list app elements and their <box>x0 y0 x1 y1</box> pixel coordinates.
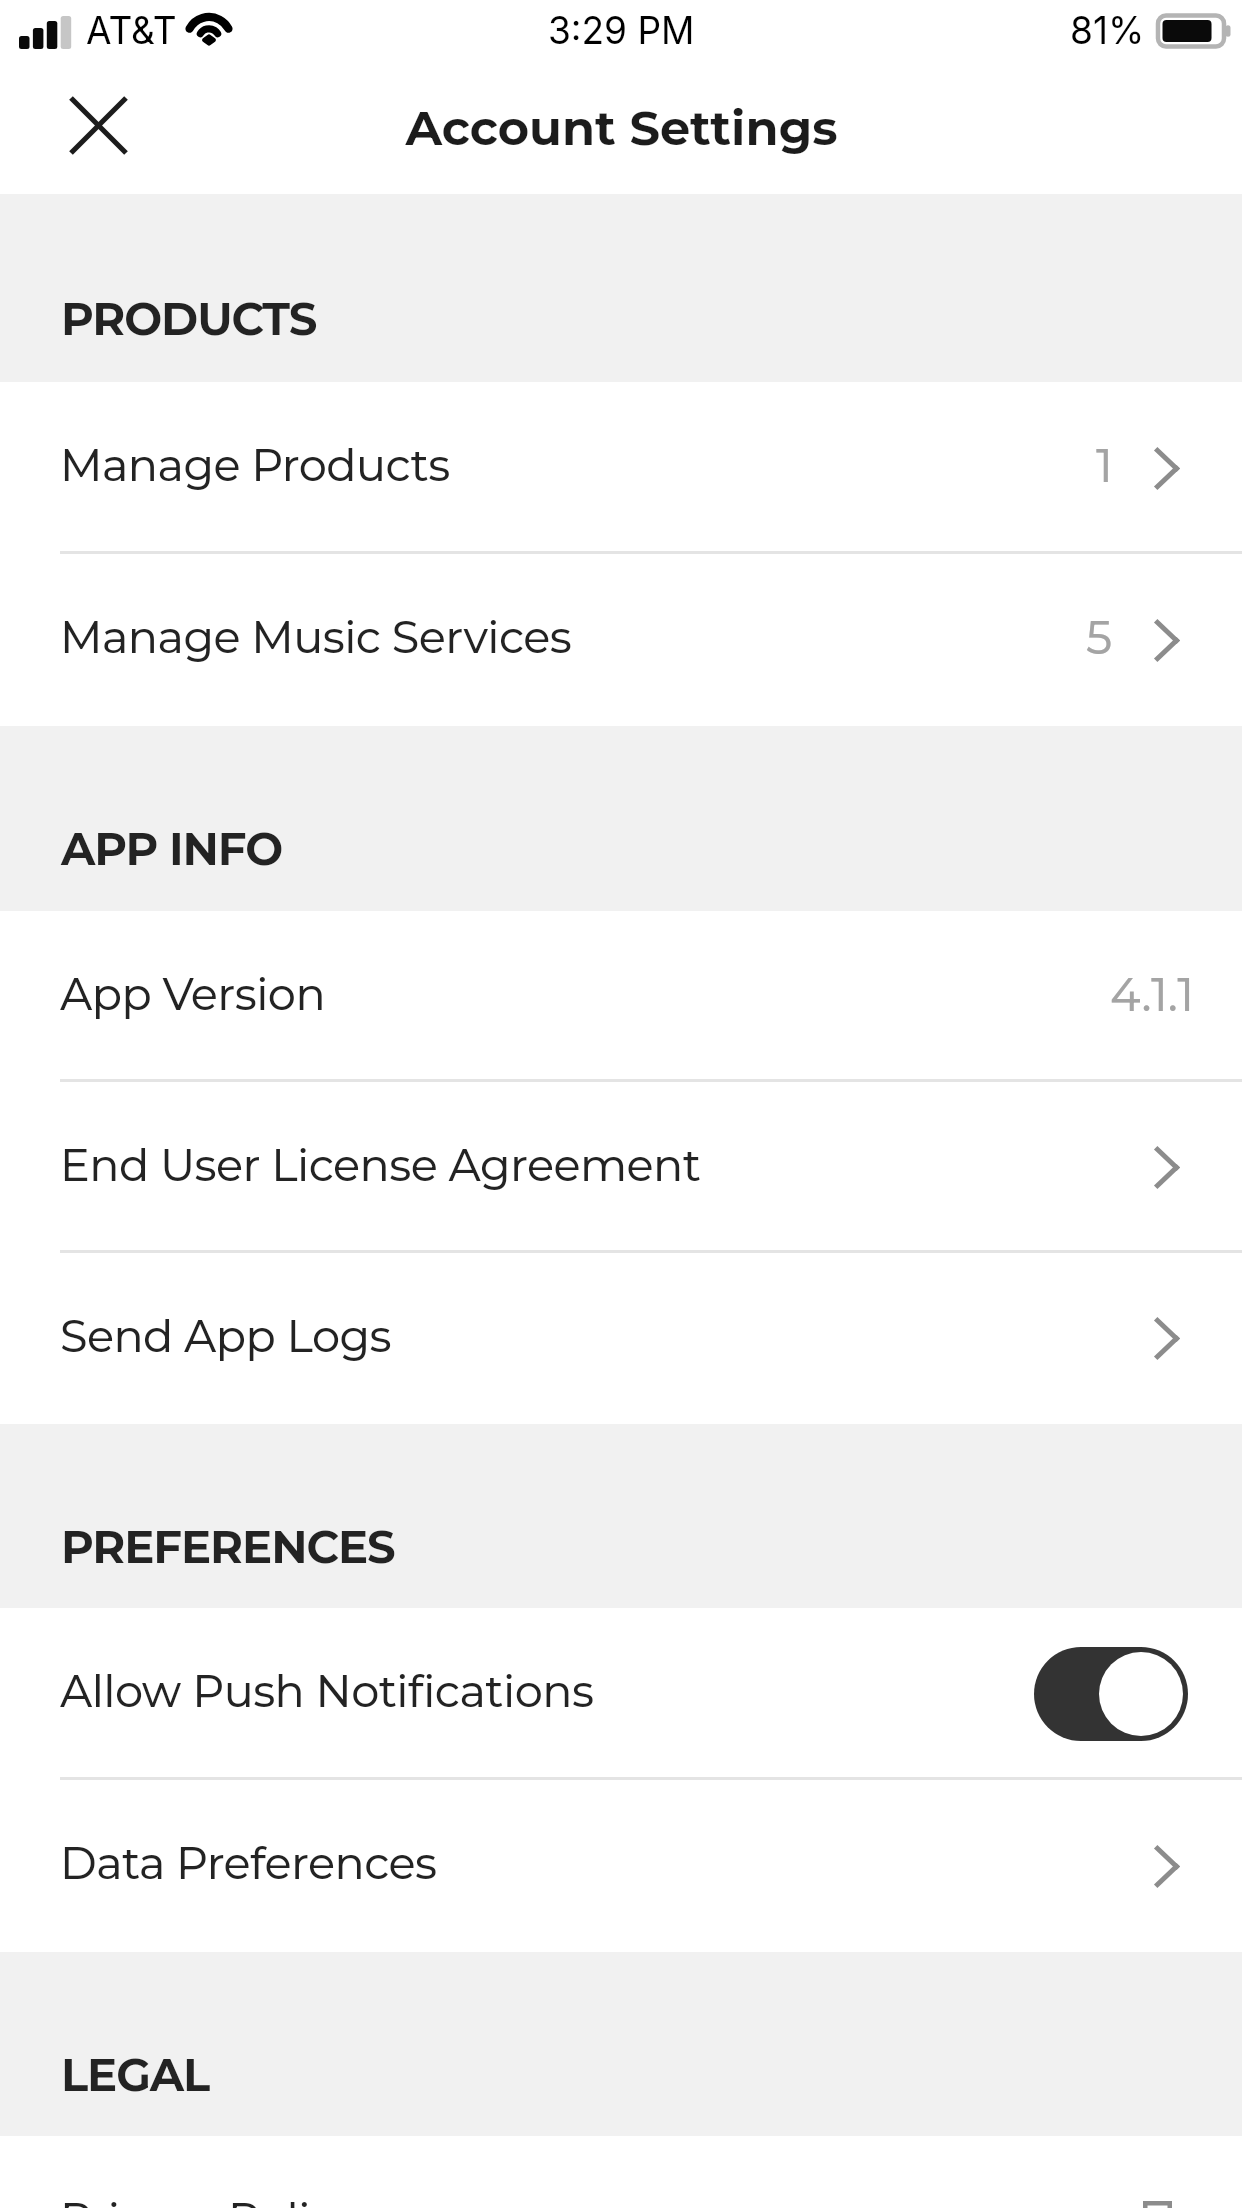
button[interactable]: Close <box>62 89 134 161</box>
button[interactable]: Manage Music Services <box>0 554 1242 726</box>
staticText: Manage Products <box>60 438 450 492</box>
staticText: 4.1.1 <box>1110 966 1195 1022</box>
button[interactable]: Privacy Policy <box>0 2136 1242 2208</box>
staticText: End User License Agreement <box>60 1138 701 1192</box>
button[interactable]: Allow Push Notifications <box>1034 1647 1188 1741</box>
staticText: 5 <box>1086 609 1113 665</box>
staticText: Manage Music Services <box>60 610 572 664</box>
staticText: Privacy Policy <box>60 2192 359 2208</box>
button[interactable]: Send App Logs <box>0 1253 1242 1424</box>
staticText: Allow Push Notifications <box>60 1664 594 1718</box>
staticText: PRODUCTS <box>61 291 317 346</box>
staticText: Data Preferences <box>60 1836 437 1890</box>
staticText: PREFERENCES <box>61 1519 395 1574</box>
button[interactable]: Manage Products <box>0 382 1242 554</box>
staticText: Send App Logs <box>60 1309 392 1363</box>
staticText: 81% <box>1070 8 1145 53</box>
staticText: 1 <box>1096 437 1113 493</box>
staticText: AT&T <box>86 8 177 53</box>
staticText: Account Settings <box>405 99 838 158</box>
button[interactable]: App Version <box>0 911 1242 1082</box>
staticText: APP INFO <box>61 821 283 876</box>
staticText: 3:29 PM <box>548 8 695 53</box>
staticText: App Version <box>60 967 326 1021</box>
staticText: LEGAL <box>61 2047 209 2102</box>
button[interactable]: Data Preferences <box>0 1780 1242 1952</box>
button[interactable]: End User License Agreement <box>0 1082 1242 1253</box>
button[interactable]: Allow Push Notifications <box>0 1608 1242 1780</box>
